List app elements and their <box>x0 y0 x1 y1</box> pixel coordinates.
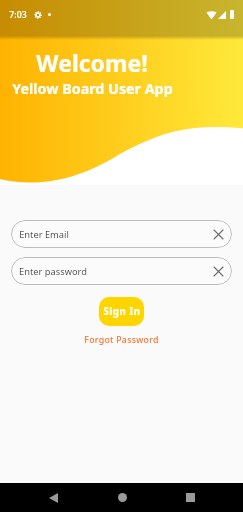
staticText: Yellow Board User App <box>12 79 173 98</box>
button[interactable]: Enter password <box>11 257 232 285</box>
other: Clear text <box>214 267 223 276</box>
button[interactable]: Recent apps <box>175 483 205 512</box>
staticText: Enter password <box>19 265 87 278</box>
staticText: Enter Email <box>19 228 69 241</box>
button[interactable]: Back <box>38 483 68 512</box>
button[interactable]: Forgot Password <box>84 334 159 346</box>
staticText: Welcome! <box>36 47 148 78</box>
staticText: 7:03 <box>9 9 27 21</box>
button[interactable]: Home <box>107 483 137 512</box>
other: Clear text <box>214 230 223 239</box>
staticText: Forgot Password <box>84 334 159 346</box>
staticText: Sign In <box>103 305 141 318</box>
button[interactable]: Enter Email <box>11 220 232 248</box>
button[interactable]: Sign In <box>99 297 144 326</box>
